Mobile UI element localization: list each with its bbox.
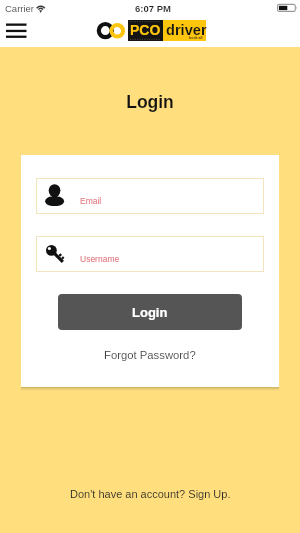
button[interactable]: Forgot Password? bbox=[100, 347, 200, 364]
staticText: Login bbox=[0, 92, 300, 112]
staticText: Carrier bbox=[5, 3, 35, 14]
button[interactable]: Login bbox=[58, 294, 242, 330]
button[interactable]: Don't have an account? Sign Up. bbox=[66, 486, 235, 502]
button[interactable]: Email bbox=[36, 178, 264, 214]
staticText: 6:07 PM bbox=[135, 3, 171, 14]
button[interactable]: Open navigation menu bbox=[0, 17, 32, 43]
staticText: Login bbox=[132, 305, 168, 320]
button[interactable]: Username bbox=[36, 236, 264, 272]
staticText: driver bbox=[166, 22, 207, 38]
staticText: book all bbox=[189, 36, 203, 40]
staticText: Email bbox=[80, 196, 102, 205]
staticText: Username bbox=[80, 254, 120, 263]
staticText: PCO bbox=[130, 22, 161, 38]
